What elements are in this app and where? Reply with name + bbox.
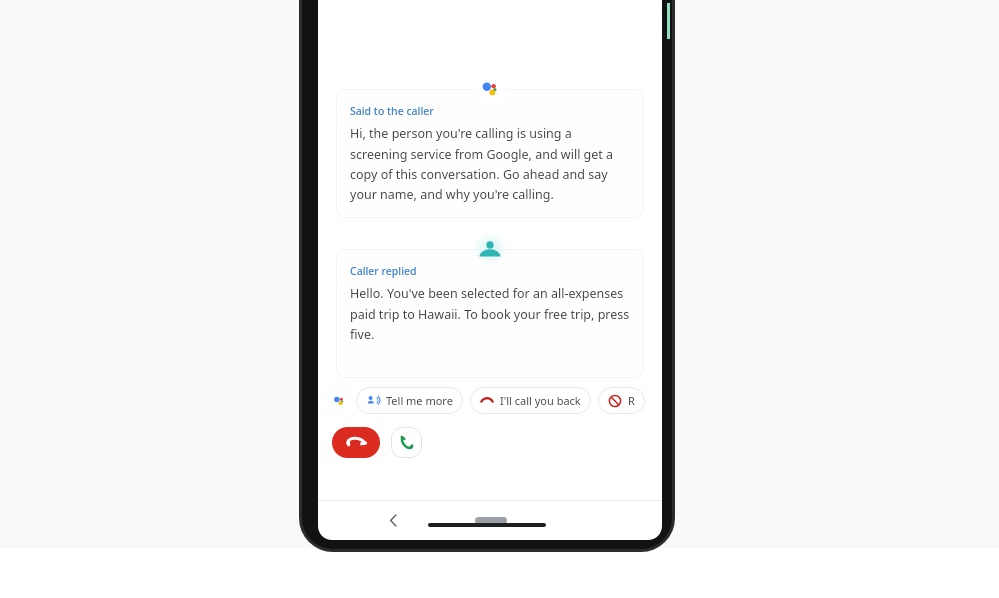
staticText: Tell me more — [386, 393, 453, 408]
staticText: R — [628, 393, 635, 408]
staticText: I'll call you back — [500, 393, 581, 408]
other: Google Assistant — [473, 72, 507, 106]
button[interactable]: R — [598, 387, 645, 414]
button[interactable]: Tell me more — [356, 387, 463, 414]
other: Caller — [473, 232, 507, 266]
staticText: Hello. You've been selected for an all-e… — [350, 285, 632, 342]
button[interactable]: Answer call — [391, 427, 422, 458]
button[interactable]: Said to the caller — [336, 89, 644, 218]
button[interactable]: Home — [475, 517, 507, 524]
button[interactable]: End call — [332, 427, 380, 458]
staticText: Caller replied — [350, 264, 417, 278]
button[interactable]: I'll call you back — [470, 387, 591, 414]
staticText: Said to the caller — [350, 104, 434, 118]
button[interactable]: Caller replied — [336, 249, 644, 378]
staticText: Hi, the person you're calling is using a… — [350, 125, 632, 202]
button[interactable]: Back — [380, 507, 406, 533]
